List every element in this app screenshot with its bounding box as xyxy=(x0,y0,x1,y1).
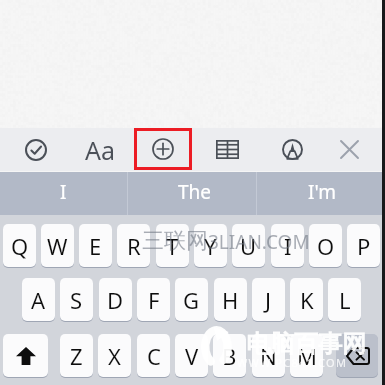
button[interactable]: H xyxy=(214,278,247,321)
staticText: WWW.PC841.COM xyxy=(237,355,348,370)
button[interactable]: U xyxy=(232,224,265,267)
button[interactable]: The xyxy=(128,172,258,215)
staticText: I xyxy=(60,179,67,205)
staticText: The xyxy=(178,179,212,205)
staticText: Y xyxy=(204,231,217,261)
staticText: T xyxy=(166,231,179,261)
staticText: F xyxy=(148,285,160,315)
staticText: Z xyxy=(70,341,83,371)
button[interactable]: P xyxy=(347,224,380,267)
staticText: M xyxy=(297,341,317,371)
staticText: K xyxy=(300,285,314,315)
button[interactable]: Done xyxy=(14,128,57,171)
staticText: N xyxy=(260,341,277,371)
button[interactable]: Backspace xyxy=(336,334,378,377)
button[interactable]: T xyxy=(156,224,189,267)
button[interactable]: C xyxy=(137,334,170,377)
staticText: 电脑百事网 xyxy=(246,329,366,359)
staticText: V xyxy=(185,341,199,371)
button[interactable]: Shift xyxy=(3,334,48,377)
staticText: P xyxy=(357,231,371,261)
button[interactable]: Close xyxy=(328,128,371,171)
button[interactable]: N xyxy=(252,334,285,377)
button[interactable]: E xyxy=(79,224,112,267)
button[interactable]: R xyxy=(117,224,150,267)
button[interactable]: W xyxy=(41,224,74,267)
button[interactable]: B xyxy=(213,334,246,377)
staticText: G xyxy=(183,285,200,315)
staticText: E xyxy=(89,231,102,261)
staticText: C xyxy=(147,341,161,371)
button[interactable]: A xyxy=(22,278,55,321)
staticText: X xyxy=(108,341,121,371)
staticText: S xyxy=(70,285,83,315)
staticText: L xyxy=(339,285,351,315)
staticText: I xyxy=(284,231,292,261)
button[interactable]: Table xyxy=(206,128,249,171)
staticText: O xyxy=(317,231,335,261)
staticText: Q xyxy=(11,231,29,261)
button[interactable]: Format xyxy=(79,128,121,171)
button[interactable]: K xyxy=(290,278,323,321)
button[interactable]: L xyxy=(328,278,361,321)
button[interactable]: Q xyxy=(3,224,36,267)
staticText: A xyxy=(31,285,46,315)
button[interactable]: J xyxy=(252,278,285,321)
button[interactable]: O xyxy=(309,224,342,267)
staticText: W xyxy=(47,231,68,261)
staticText: J xyxy=(265,285,272,315)
staticText: Aa xyxy=(85,133,116,167)
button[interactable]: Y xyxy=(194,224,227,267)
staticText: B xyxy=(222,341,237,371)
button[interactable]: Insert xyxy=(137,131,189,167)
staticText: H xyxy=(222,285,239,315)
staticText: I'm xyxy=(308,179,336,205)
button[interactable]: M xyxy=(290,334,323,377)
staticText: 三联网 xyxy=(142,227,208,255)
button[interactable]: Z xyxy=(60,334,93,377)
button[interactable]: G xyxy=(175,278,208,321)
staticText: U xyxy=(240,231,257,261)
button[interactable]: Markup xyxy=(271,128,314,171)
button[interactable]: F xyxy=(137,278,170,321)
button[interactable]: X xyxy=(98,334,131,377)
button[interactable]: I xyxy=(0,172,127,215)
button[interactable]: I xyxy=(271,224,304,267)
button[interactable]: V xyxy=(175,334,208,377)
button[interactable]: S xyxy=(60,278,93,321)
staticText: 3LIAN.COM xyxy=(208,229,310,255)
button[interactable]: I'm xyxy=(259,172,385,215)
staticText: R xyxy=(127,231,141,261)
button[interactable]: D xyxy=(99,278,132,321)
staticText: D xyxy=(107,285,124,315)
